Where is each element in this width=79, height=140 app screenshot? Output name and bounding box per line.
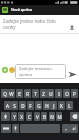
button[interactable]: R — [24, 89, 31, 98]
staticText: I — [58, 91, 60, 97]
button[interactable]: B — [41, 112, 47, 121]
button[interactable]: I — [55, 89, 62, 98]
button[interactable]: Y — [11, 112, 17, 121]
button[interactable]: Add attachment — [2, 67, 8, 73]
button[interactable]: V — [34, 112, 40, 121]
button[interactable]: N — [49, 112, 55, 121]
staticText: V — [36, 114, 39, 120]
staticText: N — [50, 114, 54, 120]
staticText: S — [13, 103, 16, 109]
staticText: R — [26, 91, 29, 97]
button[interactable]: L — [66, 101, 73, 110]
staticText: T — [34, 91, 37, 97]
button[interactable]: Voice input — [12, 124, 19, 133]
staticText: L — [68, 103, 71, 109]
button[interactable]: Shift — [1, 112, 10, 121]
button[interactable]: A — [4, 101, 11, 110]
staticText: G — [37, 103, 41, 109]
staticText: Zadejte jméno nebo číslo osoby — [3, 18, 63, 30]
button[interactable]: Add recipient — [68, 24, 76, 32]
staticText: Z — [42, 91, 45, 97]
staticText: K — [60, 103, 63, 109]
button[interactable]: W — [8, 89, 15, 98]
button[interactable]: E — [16, 89, 23, 98]
button[interactable]: T — [32, 89, 39, 98]
button[interactable]: Zadejte textovou zprávu — [15, 64, 66, 79]
button[interactable]: Period — [62, 124, 70, 133]
button[interactable]: Send — [67, 69, 77, 79]
staticText: Zadejte textovou zprávu — [19, 66, 59, 78]
button[interactable]: O — [63, 89, 70, 98]
staticText: O — [65, 91, 69, 97]
staticText: D — [21, 103, 25, 109]
staticText: P — [73, 91, 76, 97]
button[interactable]: F — [27, 101, 34, 110]
staticText: B — [43, 114, 46, 120]
button[interactable]: D — [19, 101, 26, 110]
staticText: U — [49, 91, 53, 97]
button[interactable]: Z — [40, 89, 47, 98]
button[interactable]: J — [50, 101, 57, 110]
staticText: M — [57, 114, 62, 120]
staticText: J — [53, 103, 55, 109]
staticText: W — [9, 91, 14, 97]
button[interactable]: Symbols — [1, 124, 11, 133]
button[interactable]: S — [11, 101, 18, 110]
staticText: H — [45, 103, 49, 109]
button[interactable]: M — [56, 112, 62, 121]
button[interactable]: H — [43, 101, 50, 110]
button[interactable]: Emoji — [9, 67, 15, 73]
staticText: F — [29, 103, 32, 109]
button[interactable]: G — [35, 101, 42, 110]
button[interactable]: Enter — [70, 124, 78, 133]
button[interactable]: C — [26, 112, 32, 121]
button[interactable]: Q — [1, 89, 8, 98]
button[interactable]: K — [58, 101, 65, 110]
staticText: E — [18, 91, 21, 97]
staticText: Nová zpráva — [11, 7, 32, 12]
button[interactable]: U — [47, 89, 54, 98]
button[interactable]: X — [18, 112, 24, 121]
staticText: X — [20, 114, 23, 120]
button[interactable]: P — [71, 89, 78, 98]
staticText: Y — [13, 114, 16, 120]
staticText: C — [28, 114, 31, 120]
staticText: Q — [3, 91, 7, 97]
button[interactable]: Backspace — [70, 112, 79, 121]
staticText: A — [6, 103, 9, 109]
